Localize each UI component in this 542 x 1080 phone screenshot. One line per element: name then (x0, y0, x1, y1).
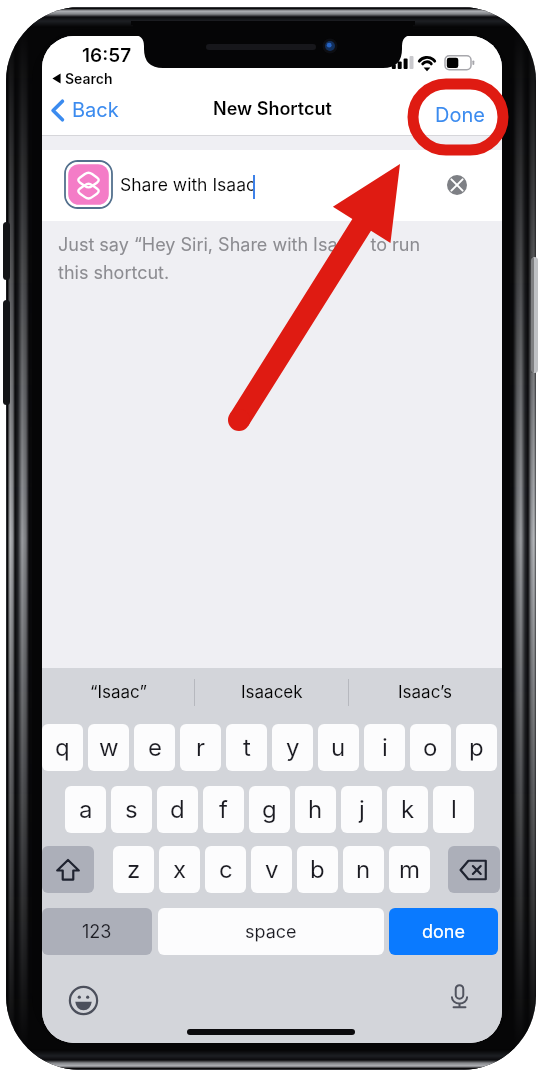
staticText: New Shortcut (213, 98, 332, 120)
staticText: y (286, 733, 300, 762)
button[interactable]: c (205, 846, 246, 893)
button[interactable]: “Isaac” (42, 668, 194, 716)
button[interactable]: k (387, 786, 428, 833)
button[interactable]: n (343, 846, 384, 893)
button[interactable]: Isaacek (195, 668, 348, 716)
staticText: q (55, 733, 70, 762)
staticText: n (356, 855, 371, 884)
button[interactable]: d (157, 786, 198, 833)
staticText: r (196, 733, 206, 762)
button[interactable]: 123 (42, 908, 152, 955)
button[interactable]: h (295, 786, 336, 833)
staticText: 123 (82, 921, 112, 943)
staticText: 16:57 (82, 44, 132, 67)
button[interactable]: u (318, 724, 359, 771)
button[interactable]: i (364, 724, 405, 771)
staticText: f (219, 795, 228, 824)
button[interactable]: Done (419, 95, 502, 135)
staticText: Share with Isaac (120, 174, 256, 195)
button[interactable]: Isaac’s (349, 668, 502, 716)
staticText: j (359, 795, 365, 824)
button[interactable]: e (134, 724, 175, 771)
button[interactable]: j (341, 786, 382, 833)
button[interactable]: Backspace (448, 846, 500, 893)
staticText: p (469, 733, 484, 762)
staticText: s (125, 795, 138, 824)
staticText: Done (435, 103, 485, 127)
button[interactable]: r (180, 724, 221, 771)
button[interactable]: f (203, 786, 244, 833)
staticText: i (382, 733, 388, 762)
staticText: d (170, 795, 185, 824)
button[interactable]: Dictation (446, 983, 473, 1010)
staticText: e (148, 733, 162, 762)
staticText: o (423, 733, 438, 762)
button[interactable]: g (249, 786, 290, 833)
staticText: m (399, 855, 421, 884)
button[interactable]: x (159, 846, 200, 893)
button[interactable]: t (226, 724, 267, 771)
button[interactable]: v (251, 846, 292, 893)
staticText: h (308, 795, 323, 824)
staticText: v (265, 855, 279, 884)
staticText: w (99, 733, 119, 762)
button[interactable]: y (272, 724, 313, 771)
button[interactable]: o (410, 724, 451, 771)
button[interactable]: w (88, 724, 129, 771)
button[interactable]: Clear text (447, 175, 467, 195)
staticText: b (310, 855, 325, 884)
button[interactable]: q (42, 724, 83, 771)
button[interactable]: b (297, 846, 338, 893)
staticText: done (422, 921, 465, 943)
button[interactable]: done (389, 908, 498, 955)
button[interactable]: z (113, 846, 154, 893)
staticText: “Isaac” (90, 682, 147, 703)
staticText: Just say “Hey Siri, Share with Isaac” to… (58, 234, 426, 283)
button[interactable]: a (65, 786, 106, 833)
staticText: l (451, 795, 457, 824)
staticText: t (243, 733, 251, 762)
button[interactable]: Share with Isaac (42, 150, 502, 221)
staticText: Search (65, 70, 113, 87)
staticText: c (219, 855, 233, 884)
staticText: Isaacek (241, 682, 303, 703)
button[interactable]: space (158, 908, 384, 955)
staticText: x (173, 855, 187, 884)
staticText: u (331, 733, 346, 762)
staticText: space (245, 921, 297, 943)
button[interactable]: Shift (42, 846, 94, 893)
button[interactable]: Back (51, 90, 171, 130)
button[interactable]: p (456, 724, 497, 771)
button[interactable]: l (433, 786, 474, 833)
button[interactable]: s (111, 786, 152, 833)
staticText: k (401, 795, 415, 824)
staticText: a (79, 795, 93, 824)
button[interactable]: Emoji keyboard (69, 986, 98, 1015)
staticText: z (127, 855, 141, 884)
staticText: Isaac’s (398, 682, 453, 703)
staticText: Back (72, 98, 119, 122)
staticText: g (262, 795, 277, 824)
button[interactable]: m (389, 846, 430, 893)
